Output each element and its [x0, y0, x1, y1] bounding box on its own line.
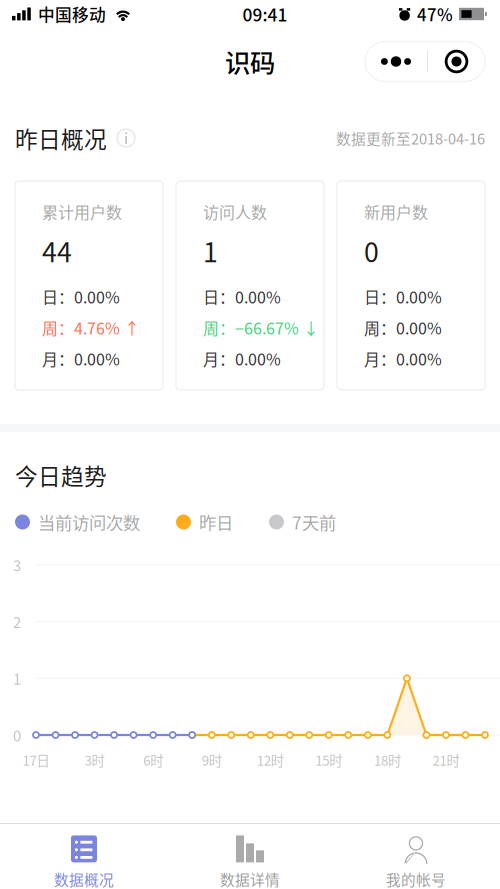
button[interactable]: 数据详情 [167, 824, 333, 889]
staticText: 周：0.00% [364, 316, 442, 339]
button[interactable]: 更多 [365, 41, 427, 81]
staticText: 1 [13, 668, 21, 689]
staticText: 日：0.00% [364, 285, 442, 308]
button[interactable]: 我的帐号 [333, 824, 499, 889]
staticText: 累计用户数 [42, 200, 122, 223]
staticText: 0 [13, 724, 21, 746]
staticText: 7天前 [292, 509, 336, 535]
staticText: 访问人数 [203, 200, 267, 223]
staticText: 月：0.00% [364, 347, 442, 370]
staticText: 数据详情 [220, 868, 280, 889]
staticText: 12时 [257, 750, 284, 770]
staticText: 月：0.00% [203, 347, 281, 370]
staticText: 2 [13, 611, 21, 632]
staticText: 当前访问次数 [38, 509, 140, 535]
staticText: 3 [13, 554, 21, 575]
staticText: 0 [364, 231, 379, 270]
staticText: 数据更新至2018-04-16 [336, 127, 485, 149]
staticText: 今日趋势 [15, 459, 107, 491]
button[interactable]: 数据概况 [1, 824, 167, 889]
staticText: 识码 [225, 43, 275, 80]
staticText: 44 [42, 231, 72, 270]
staticText: 09:41 [242, 1, 287, 27]
staticText: 月：0.00% [42, 347, 120, 370]
staticText: i [124, 127, 128, 148]
staticText: 日：0.00% [203, 285, 281, 308]
staticText: 21时 [432, 750, 459, 770]
staticText: 1 [203, 231, 218, 270]
staticText: 中国移动 [38, 2, 106, 26]
button[interactable]: 访问人数 [176, 181, 324, 390]
staticText: 17日 [22, 750, 49, 770]
button[interactable]: 新用户数 [337, 181, 485, 390]
staticText: 新用户数 [364, 200, 428, 223]
staticText: 6时 [143, 750, 163, 770]
button[interactable]: 累计用户数 [15, 181, 163, 390]
button[interactable]: 关闭 [428, 41, 485, 81]
staticText: 我的帐号 [386, 868, 446, 889]
staticText: 15时 [315, 750, 342, 770]
staticText: 周：−66.67% ↓ [203, 316, 319, 339]
button[interactable]: 说明 [110, 122, 142, 154]
staticText: 昨日概况 [15, 122, 107, 154]
staticText: 数据概况 [54, 868, 114, 889]
staticText: 3时 [85, 750, 105, 770]
staticText: 18时 [374, 750, 401, 770]
staticText: 日：0.00% [42, 285, 120, 308]
staticText: 47% [417, 2, 453, 26]
staticText: 昨日 [199, 509, 233, 535]
staticText: 9时 [202, 750, 222, 770]
staticText: 周：4.76% ↑ [42, 316, 140, 339]
